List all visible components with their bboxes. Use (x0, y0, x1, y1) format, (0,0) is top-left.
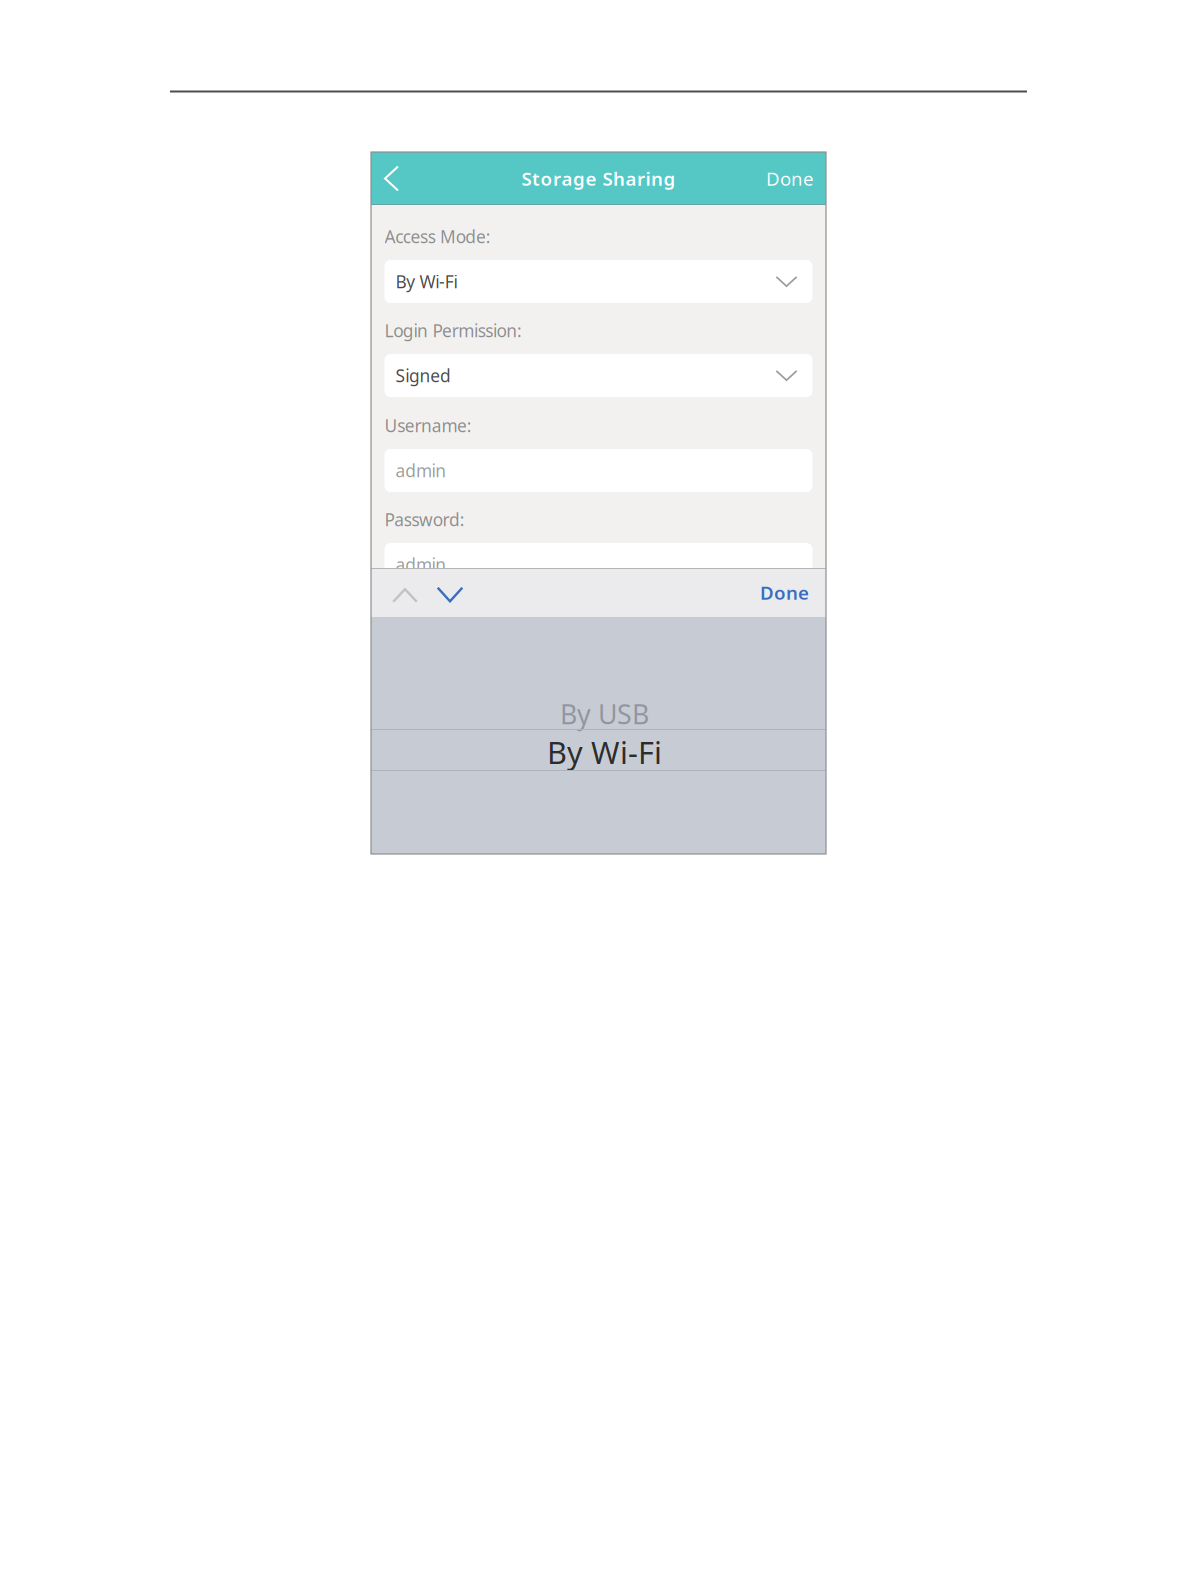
button[interactable]: Done (766, 152, 826, 205)
staticText: Signed (395, 364, 451, 387)
staticText: By Wi-Fi (547, 732, 662, 772)
staticText: Storage Sharing (521, 166, 675, 191)
staticText: Username: (384, 414, 472, 437)
button[interactable]: By Wi-Fi (371, 730, 826, 770)
staticText: Access Mode: (384, 225, 491, 248)
staticText: Password: (384, 508, 465, 531)
staticText: Done (760, 580, 809, 605)
button[interactable]: By USB (371, 691, 826, 729)
staticText: Login Permission: (384, 319, 522, 342)
staticText: Done (766, 166, 814, 191)
button[interactable]: Next field (427, 568, 473, 617)
staticText: admin (395, 553, 446, 576)
button[interactable]: Back (371, 152, 422, 205)
staticText: admin (395, 459, 446, 482)
staticText: By USB (560, 696, 649, 732)
button[interactable]: Previous field (383, 568, 427, 617)
button[interactable]: Done (750, 568, 819, 617)
button[interactable]: Signed (384, 354, 812, 397)
staticText: By Wi-Fi (395, 270, 457, 293)
button[interactable]: By Wi-Fi (384, 260, 812, 303)
